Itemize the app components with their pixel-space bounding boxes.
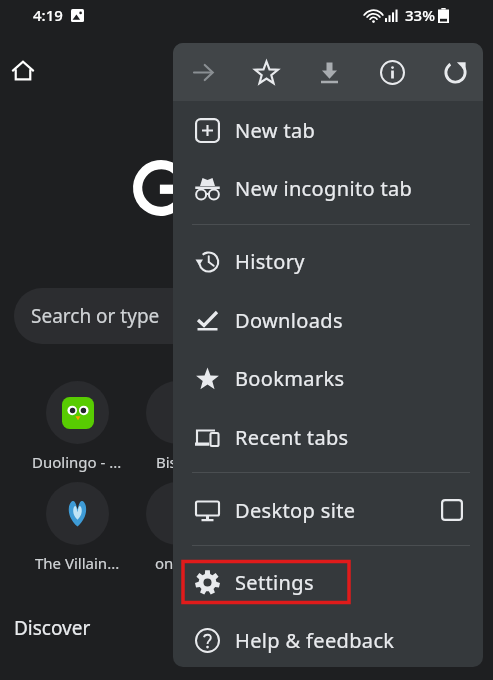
button[interactable]: Downloads [173,296,483,344]
button[interactable]: History [173,237,483,285]
button[interactable]: onsite [127,482,227,573]
staticText: New tab [235,117,316,144]
button[interactable]: New tab [173,106,483,154]
button[interactable]: Desktop site [173,486,483,534]
staticText: Discover [14,615,91,641]
staticText: Downloads [235,307,343,334]
staticText: Desktop site [235,497,356,524]
button[interactable]: Bislan [127,381,227,472]
staticText: Help & feedback [235,627,395,654]
button[interactable]: Search or type [14,288,284,344]
staticText: onsite [155,553,199,573]
staticText: Bookmarks [235,365,345,392]
button[interactable]: Settings [173,558,483,606]
button[interactable]: Recent tabs [173,413,483,461]
button[interactable]: Home [10,58,36,84]
button[interactable]: Help & feedback [173,616,483,664]
staticText: Recent tabs [235,424,349,451]
button[interactable]: Duolingo - ... [27,381,127,472]
button[interactable]: Forward [183,52,223,92]
staticText: History [235,248,305,275]
button[interactable]: Bookmarks [173,354,483,402]
button[interactable]: The Villain... [27,482,127,573]
staticText: Search or type [31,303,160,329]
staticText: Bislan [156,452,199,472]
staticText: 33% [405,5,435,25]
staticText: Settings [235,569,314,596]
staticText: New incognito tab [235,175,413,202]
staticText: The Villain... [35,553,120,573]
button[interactable]: Reload [435,52,475,92]
staticText: Duolingo - ... [32,452,122,472]
staticText: 4:19 [33,5,63,25]
button[interactable]: Download [309,52,349,92]
button[interactable]: New incognito tab [173,164,483,212]
button[interactable]: Bookmark [246,52,286,92]
button[interactable]: Page info [372,52,412,92]
